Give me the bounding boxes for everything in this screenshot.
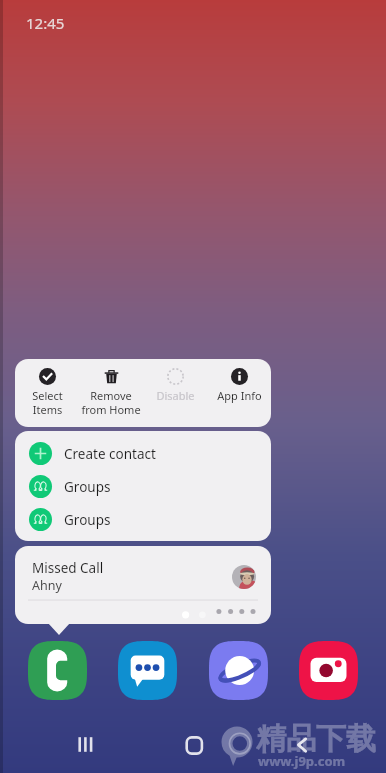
staticText: www.j9p.com <box>258 752 346 770</box>
staticText: Remove from Home <box>81 388 141 417</box>
staticText: 12:45 <box>26 13 65 33</box>
button[interactable]: Create contact <box>15 437 271 470</box>
button[interactable]: Messages <box>118 641 177 700</box>
staticText: Disable <box>156 388 195 403</box>
button[interactable]: Internet <box>209 641 268 700</box>
button[interactable]: Phone <box>28 641 87 700</box>
button[interactable]: Select Items <box>15 359 79 427</box>
staticText: Groups <box>64 478 111 496</box>
button[interactable]: Camera <box>299 641 358 700</box>
button[interactable]: Back <box>286 729 319 762</box>
button[interactable]: Groups <box>15 470 271 503</box>
staticText: Create contact <box>64 445 156 463</box>
staticText: Missed Call <box>32 559 104 577</box>
staticText: Select Items <box>32 388 63 417</box>
button[interactable]: Disable <box>143 359 207 427</box>
button[interactable]: Recents <box>69 728 102 761</box>
staticText: 精品下载 <box>256 720 376 758</box>
button[interactable]: Home <box>178 729 211 762</box>
staticText: App Info <box>217 388 262 403</box>
button[interactable]: Groups <box>15 503 271 536</box>
staticText: Groups <box>64 511 111 529</box>
button[interactable]: Remove from Home <box>79 359 143 427</box>
button[interactable]: App Info <box>207 359 271 427</box>
staticText: Ahny <box>32 577 62 594</box>
